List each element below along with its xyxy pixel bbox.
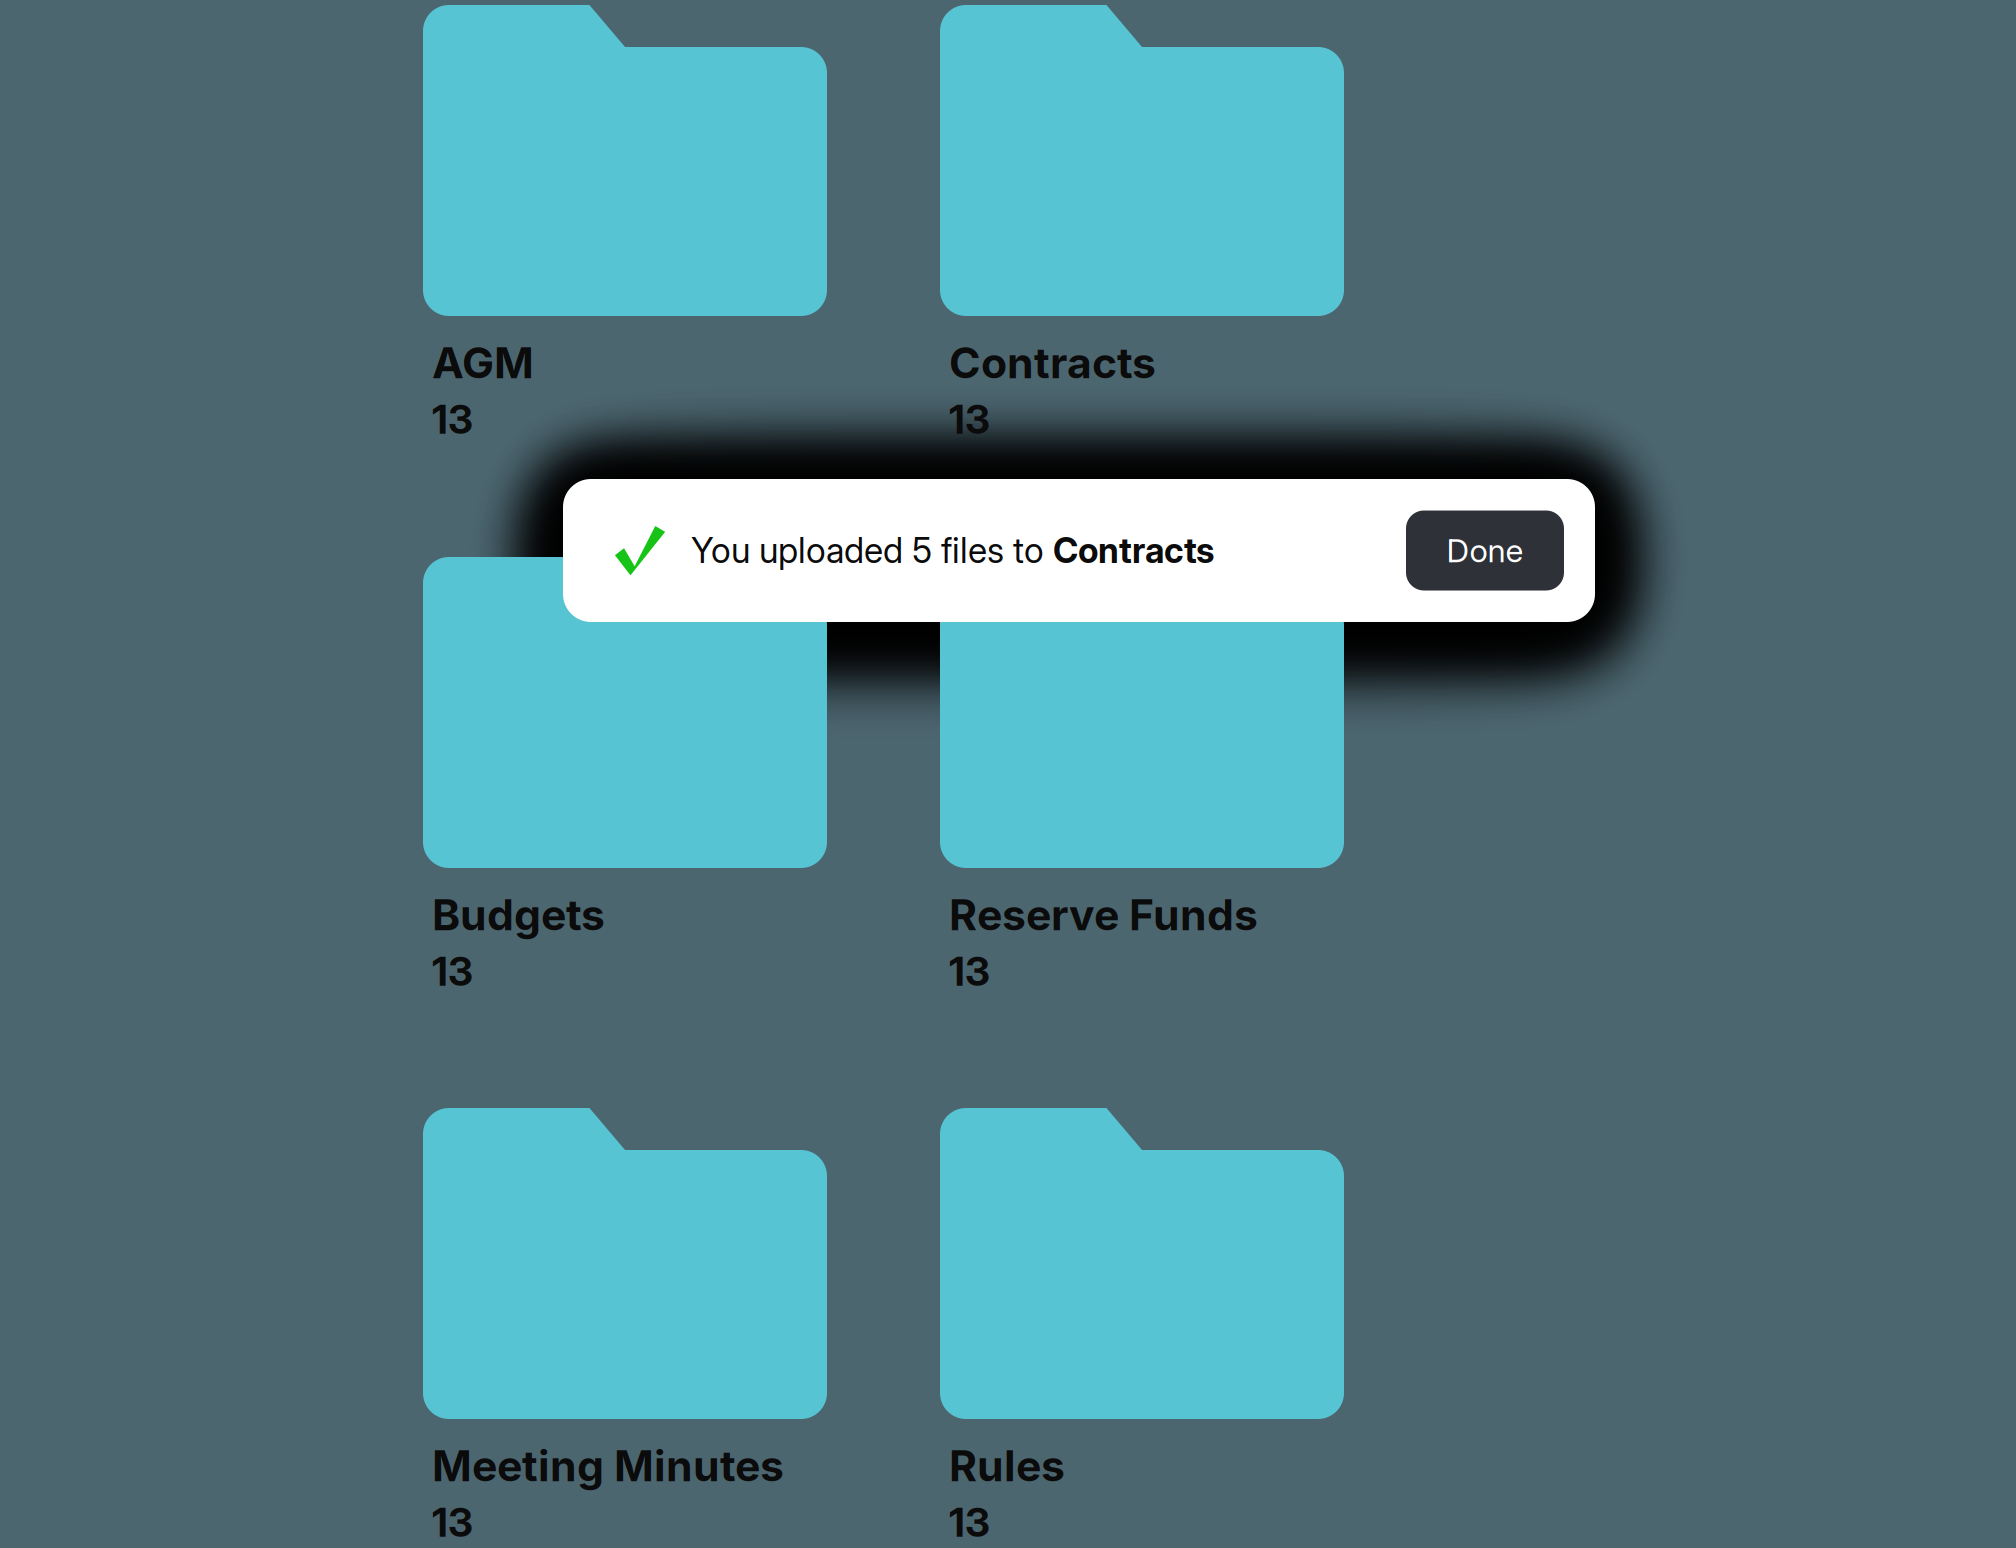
staticText: 13 bbox=[432, 395, 473, 443]
staticText: 13 bbox=[949, 395, 990, 443]
button[interactable]: Reserve Funds bbox=[940, 557, 1344, 982]
button[interactable]: Rules bbox=[940, 1108, 1344, 1533]
staticText: AGM bbox=[432, 337, 534, 389]
staticText: Contracts bbox=[949, 337, 1156, 389]
staticText: 13 bbox=[949, 947, 990, 995]
staticText: You uploaded 5 files to bbox=[691, 529, 1053, 571]
staticText: Budgets bbox=[432, 889, 605, 941]
button[interactable]: Meeting Minutes bbox=[423, 1108, 843, 1533]
button[interactable]: Budgets bbox=[423, 557, 827, 982]
staticText: 13 bbox=[432, 1498, 473, 1546]
staticText: Contracts bbox=[1053, 529, 1214, 571]
staticText: 13 bbox=[949, 1498, 990, 1546]
staticText: Rules bbox=[949, 1440, 1065, 1492]
staticText: Done bbox=[1446, 531, 1523, 570]
button[interactable]: Done bbox=[1406, 510, 1564, 590]
staticText: Reserve Funds bbox=[949, 889, 1258, 941]
staticText: Meeting Minutes bbox=[432, 1440, 784, 1492]
button[interactable]: AGM bbox=[423, 5, 827, 430]
button[interactable]: Contracts bbox=[940, 5, 1344, 430]
staticText: 13 bbox=[432, 947, 473, 995]
